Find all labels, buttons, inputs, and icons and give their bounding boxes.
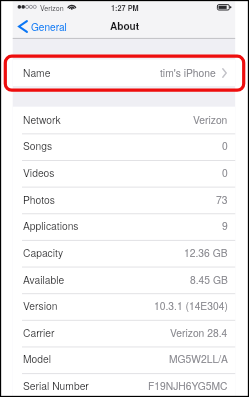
- staticText: 0: [222, 138, 228, 153]
- staticText: tim's iPhone: [160, 65, 216, 80]
- staticText: Photos: [23, 192, 55, 207]
- staticText: F19NJH6YG5MC: [148, 378, 228, 393]
- staticText: Model: [23, 351, 52, 366]
- button[interactable]: Capacity: [13, 240, 236, 267]
- staticText: 73: [216, 192, 228, 207]
- staticText: 12.36 GB: [184, 245, 228, 260]
- staticText: 1:27 PM: [111, 3, 139, 13]
- staticText: 9: [222, 218, 228, 233]
- staticText: Videos: [23, 165, 55, 180]
- staticText: General: [31, 19, 67, 33]
- staticText: Songs: [23, 138, 53, 153]
- staticText: Network: [23, 112, 61, 127]
- staticText: Serial Number: [23, 378, 89, 393]
- staticText: Carrier: [23, 325, 55, 340]
- button[interactable]: Available: [13, 267, 236, 294]
- staticText: 0: [222, 165, 228, 180]
- staticText: Available: [23, 272, 65, 287]
- staticText: Verizon: [40, 3, 64, 13]
- staticText: 8.45 GB: [190, 272, 228, 287]
- button[interactable]: Back to General: [15, 15, 73, 37]
- button[interactable]: Version: [13, 293, 236, 320]
- button[interactable]: Applications: [13, 213, 236, 240]
- button[interactable]: Model: [13, 346, 236, 373]
- other: Back to General: [18, 20, 28, 33]
- staticText: Name: [23, 65, 51, 80]
- button[interactable]: Network: [13, 107, 236, 134]
- staticText: MG5W2LL/A: [169, 351, 228, 366]
- button[interactable]: Carrier: [13, 320, 236, 347]
- button[interactable]: Name: [13, 59, 236, 86]
- staticText: Verizon 28.4: [170, 325, 228, 340]
- staticText: About: [110, 19, 140, 33]
- button[interactable]: Videos: [13, 160, 236, 187]
- button[interactable]: Photos: [13, 187, 236, 214]
- button[interactable]: Serial Number: [13, 373, 236, 397]
- staticText: Applications: [23, 218, 79, 233]
- staticText: 10.3.1 (14E304): [154, 298, 228, 313]
- staticText: Capacity: [23, 245, 64, 260]
- button[interactable]: Songs: [13, 133, 236, 160]
- staticText: Verizon: [193, 112, 228, 127]
- staticText: Version: [23, 298, 58, 313]
